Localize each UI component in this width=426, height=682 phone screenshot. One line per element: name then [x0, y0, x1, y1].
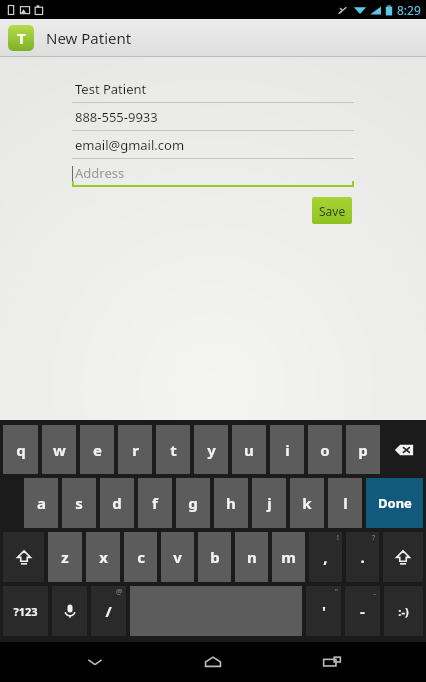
staticText: b	[210, 547, 220, 567]
staticText: !	[337, 533, 339, 543]
button[interactable]: t	[156, 425, 190, 474]
staticText: -	[360, 601, 365, 621]
button[interactable]: '	[306, 586, 341, 636]
staticText: u	[244, 440, 254, 460]
button[interactable]: -	[345, 586, 380, 636]
staticText: /	[105, 601, 112, 621]
button[interactable]: v	[161, 532, 194, 582]
button[interactable]: a	[24, 478, 58, 528]
staticText: a	[37, 493, 46, 513]
staticText: Test Patient	[75, 80, 147, 98]
staticText: y	[207, 440, 216, 460]
button[interactable]: :-)	[384, 586, 423, 636]
button[interactable]: j	[252, 478, 286, 528]
staticText: h	[226, 493, 236, 513]
staticText: w	[53, 440, 66, 460]
staticText: .	[360, 547, 365, 567]
button[interactable]: c	[124, 532, 157, 582]
staticText: l	[343, 493, 348, 513]
button[interactable]: Voice input	[52, 586, 87, 636]
staticText: email@gmail.com	[75, 136, 185, 154]
button[interactable]: Address	[72, 159, 354, 187]
staticText: c	[137, 547, 145, 567]
button[interactable]: Test Patient	[72, 75, 354, 103]
staticText: v	[173, 547, 182, 567]
button[interactable]: Shift	[383, 532, 423, 582]
button[interactable]: Recent apps	[308, 642, 356, 682]
staticText: m	[281, 547, 296, 567]
staticText: z	[61, 547, 69, 567]
button[interactable]: Backspace	[384, 425, 423, 474]
button[interactable]: 888-555-9933	[72, 103, 354, 131]
button[interactable]: Shift	[3, 532, 44, 582]
button[interactable]: h	[214, 478, 248, 528]
staticText: Address	[75, 164, 125, 182]
staticText: Done	[378, 494, 412, 512]
staticText: ,	[323, 547, 328, 567]
button[interactable]: i	[270, 425, 304, 474]
button[interactable]: q	[3, 425, 38, 474]
button[interactable]: /	[91, 586, 126, 636]
button[interactable]: w	[42, 425, 76, 474]
staticText: o	[320, 440, 330, 460]
button[interactable]: ,	[309, 532, 342, 582]
staticText: d	[112, 493, 122, 513]
button[interactable]: u	[232, 425, 266, 474]
staticText: @	[116, 587, 123, 597]
staticText: "	[335, 587, 338, 597]
button[interactable]: T	[0, 19, 426, 57]
staticText: g	[188, 493, 198, 513]
button[interactable]: d	[100, 478, 134, 528]
staticText: n	[247, 547, 257, 567]
staticText: ?123	[13, 604, 38, 619]
button[interactable]: ?123	[3, 586, 48, 636]
button[interactable]: Done	[366, 478, 423, 528]
staticText: 888-555-9933	[75, 108, 158, 126]
button[interactable]: m	[272, 532, 305, 582]
button[interactable]: .	[346, 532, 379, 582]
staticText: _	[373, 587, 377, 597]
button[interactable]: k	[290, 478, 324, 528]
button[interactable]: r	[118, 425, 152, 474]
button[interactable]: p	[346, 425, 380, 474]
staticText: T	[17, 28, 26, 48]
staticText: 8:29	[397, 2, 421, 18]
staticText: r	[132, 440, 139, 460]
button[interactable]: o	[308, 425, 342, 474]
button[interactable]: f	[138, 478, 172, 528]
button[interactable]: x	[86, 532, 120, 582]
staticText: j	[267, 493, 272, 513]
button[interactable]: e	[80, 425, 114, 474]
button[interactable]: email@gmail.com	[72, 131, 354, 159]
staticText: x	[99, 547, 108, 567]
staticText: :-)	[398, 604, 409, 619]
button[interactable]: y	[194, 425, 228, 474]
staticText: q	[16, 440, 26, 460]
staticText: t	[170, 440, 177, 460]
staticText: '	[322, 601, 326, 621]
staticText: Save	[319, 203, 346, 219]
staticText: f	[152, 493, 158, 513]
button[interactable]: l	[328, 478, 362, 528]
staticText: k	[302, 493, 312, 513]
button[interactable]: s	[62, 478, 96, 528]
button[interactable]: Hide keyboard	[71, 642, 119, 682]
staticText: ?	[372, 533, 376, 543]
staticText: i	[285, 440, 290, 460]
button[interactable]: b	[198, 532, 231, 582]
button[interactable]: Home	[189, 642, 237, 682]
staticText: s	[75, 493, 83, 513]
button[interactable]: n	[235, 532, 268, 582]
staticText: p	[358, 440, 368, 460]
button[interactable]: z	[48, 532, 82, 582]
button[interactable]: g	[176, 478, 210, 528]
staticText: e	[93, 440, 102, 460]
button[interactable]: Save	[312, 197, 352, 224]
staticText: New Patient	[46, 28, 132, 48]
